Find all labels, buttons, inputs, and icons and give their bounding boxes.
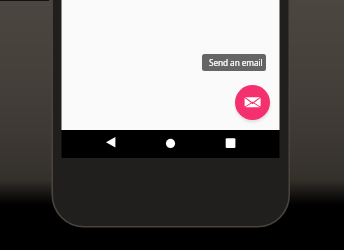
button[interactable]: [163, 135, 179, 151]
button[interactable]: Send an email: [202, 54, 266, 71]
button[interactable]: [223, 135, 238, 150]
button[interactable]: [235, 85, 270, 120]
button[interactable]: [102, 134, 118, 150]
staticText: Send an email: [209, 57, 263, 68]
